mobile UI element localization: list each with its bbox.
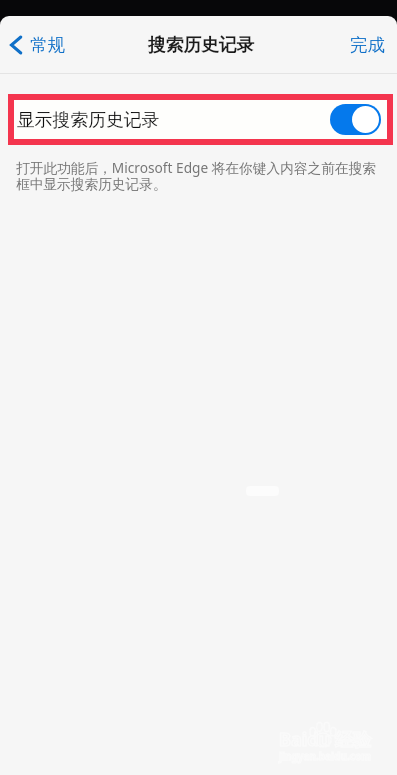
staticText: 搜索历史记录 <box>148 34 255 56</box>
button[interactable]: 完成 <box>337 25 397 65</box>
button[interactable]: 显示搜索历史记录开关 <box>330 104 381 135</box>
button[interactable]: 常规 <box>0 26 75 64</box>
button[interactable]: 显示搜索历史记录 <box>8 94 393 145</box>
staticText: 完成 <box>350 34 385 56</box>
staticText: 常规 <box>30 34 65 56</box>
staticText: 显示搜索历史记录 <box>17 109 160 131</box>
staticText: 打开此功能后，Microsoft Edge 将在你键入内容之前在搜索框中显示搜索… <box>16 158 381 193</box>
